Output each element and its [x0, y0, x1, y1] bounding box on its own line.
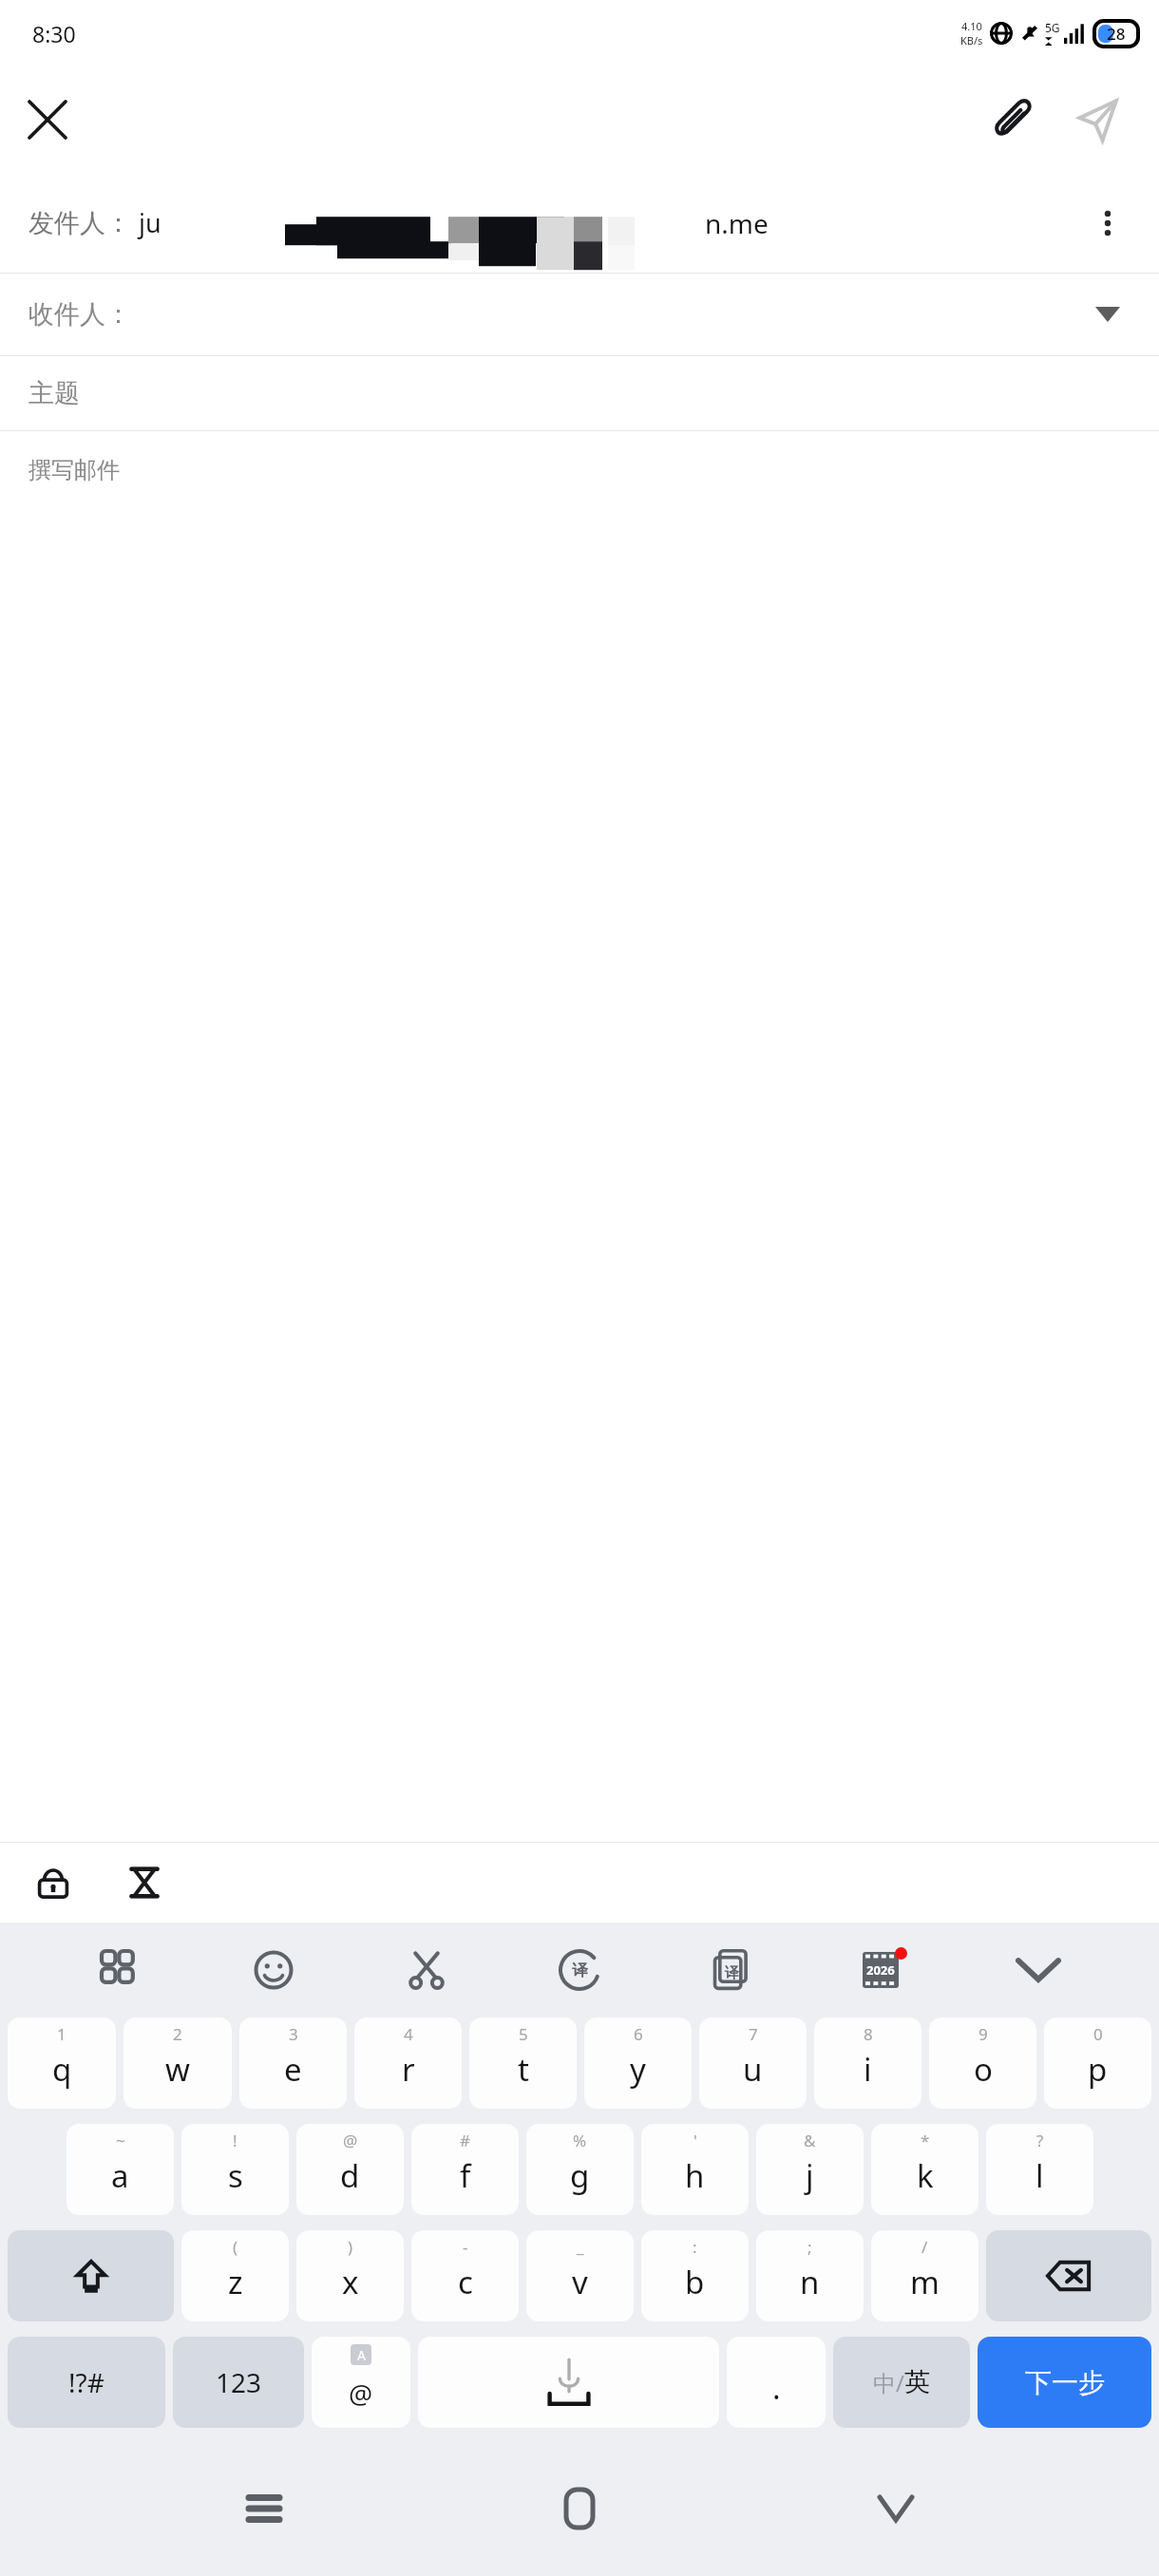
staticText: w: [165, 2048, 190, 2091]
staticText: ?: [1036, 2130, 1044, 2151]
button[interactable]: Expiration: [108, 1847, 180, 1919]
button[interactable]: Theme: [842, 1926, 929, 2014]
staticText: ~: [116, 2130, 125, 2151]
staticText: 8:30: [32, 19, 76, 48]
staticText: z: [228, 2261, 243, 2303]
staticText: 1: [57, 2023, 66, 2045]
staticText: ': [693, 2130, 697, 2151]
button[interactable]: 主题: [0, 356, 1159, 430]
button[interactable]: Backspace: [986, 2230, 1151, 2321]
staticText: p: [1088, 2048, 1108, 2091]
staticText: %: [573, 2130, 587, 2151]
button[interactable]: /: [871, 2230, 978, 2321]
button[interactable]: #: [411, 2124, 519, 2215]
button[interactable]: 7: [699, 2017, 807, 2109]
button[interactable]: Translate: [536, 1926, 623, 2014]
button[interactable]: !?#: [8, 2337, 165, 2428]
staticText: t: [518, 2048, 529, 2091]
staticText: ;: [807, 2236, 812, 2258]
button[interactable]: ;: [756, 2230, 864, 2321]
button[interactable]: Attach file: [977, 83, 1051, 157]
staticText: q: [52, 2048, 72, 2091]
staticText: *: [921, 2130, 930, 2151]
button[interactable]: ': [641, 2124, 749, 2215]
button[interactable]: ~: [66, 2124, 174, 2215]
staticText: KB/s: [960, 33, 983, 47]
button[interactable]: 收件人：: [0, 274, 1159, 355]
button[interactable]: :: [641, 2230, 749, 2321]
button[interactable]: 0: [1044, 2017, 1151, 2109]
staticText: x: [342, 2261, 359, 2303]
button[interactable]: 4: [354, 2017, 462, 2109]
button[interactable]: 发件人：: [0, 173, 1159, 273]
staticText: 发件人：: [28, 207, 131, 239]
staticText: 下一步: [1025, 2366, 1105, 2399]
staticText: ju: [139, 205, 161, 240]
staticText: 撰写邮件: [28, 456, 120, 484]
staticText: :: [693, 2236, 697, 2258]
button[interactable]: 1: [8, 2017, 116, 2109]
button[interactable]: *: [871, 2124, 978, 2215]
button[interactable]: grid: [77, 1926, 164, 2014]
button[interactable]: 6: [584, 2017, 692, 2109]
staticText: m: [910, 2261, 940, 2303]
staticText: #: [460, 2130, 470, 2151]
button[interactable]: 3: [239, 2017, 347, 2109]
staticText: 中/: [873, 2367, 904, 2398]
button[interactable]: ): [296, 2230, 404, 2321]
button[interactable]: 8: [814, 2017, 921, 2109]
button[interactable]: 中/: [833, 2337, 970, 2428]
staticText: 8: [864, 2023, 873, 2045]
staticText: -: [463, 2236, 468, 2258]
staticText: !?#: [68, 2364, 104, 2400]
button[interactable]: Hide keyboard: [995, 1926, 1082, 2014]
staticText: g: [570, 2154, 590, 2197]
staticText: 6: [634, 2023, 643, 2045]
button[interactable]: Doc translate: [689, 1926, 776, 2014]
button[interactable]: (: [181, 2230, 289, 2321]
button[interactable]: Back: [844, 2456, 948, 2561]
button[interactable]: 5: [469, 2017, 577, 2109]
button[interactable]: Expand recipients: [1077, 284, 1138, 345]
button[interactable]: ?: [986, 2124, 1093, 2215]
button[interactable]: -: [411, 2230, 519, 2321]
staticText: 英: [904, 2366, 930, 2398]
staticText: 9: [978, 2023, 988, 2045]
staticText: o: [974, 2048, 993, 2091]
staticText: n: [800, 2261, 820, 2303]
button[interactable]: Home: [527, 2456, 632, 2561]
staticText: @: [343, 2130, 358, 2151]
button[interactable]: Space: [418, 2337, 719, 2428]
button[interactable]: Emoji: [230, 1926, 317, 2014]
button[interactable]: @: [296, 2124, 404, 2215]
button[interactable]: A: [312, 2337, 410, 2428]
staticText: @: [349, 2376, 373, 2412]
button[interactable]: Send: [1060, 83, 1134, 157]
button[interactable]: _: [526, 2230, 634, 2321]
button[interactable]: .: [727, 2337, 826, 2428]
button[interactable]: 2: [123, 2017, 232, 2109]
button[interactable]: Close: [13, 85, 82, 154]
button[interactable]: &: [756, 2124, 864, 2215]
staticText: h: [685, 2154, 705, 2197]
staticText: i: [864, 2048, 872, 2091]
button[interactable]: Shift: [8, 2230, 174, 2321]
staticText: A: [357, 2346, 366, 2364]
button[interactable]: 123: [173, 2337, 304, 2428]
button[interactable]: Recents: [212, 2456, 316, 2561]
button[interactable]: %: [526, 2124, 634, 2215]
staticText: b: [685, 2261, 705, 2303]
staticText: .: [772, 2367, 781, 2409]
button[interactable]: 9: [929, 2017, 1036, 2109]
staticText: 译: [725, 1964, 739, 1982]
button[interactable]: 下一步: [978, 2337, 1151, 2428]
button[interactable]: Encrypt: [17, 1847, 89, 1919]
staticText: 2026: [866, 1961, 895, 1979]
staticText: &: [804, 2130, 816, 2151]
staticText: a: [111, 2154, 129, 2197]
staticText: s: [228, 2154, 243, 2197]
button[interactable]: Clipboard: [383, 1926, 470, 2014]
button[interactable]: !: [181, 2124, 289, 2215]
button[interactable]: More options: [1077, 193, 1138, 254]
staticText: _: [577, 2236, 584, 2258]
